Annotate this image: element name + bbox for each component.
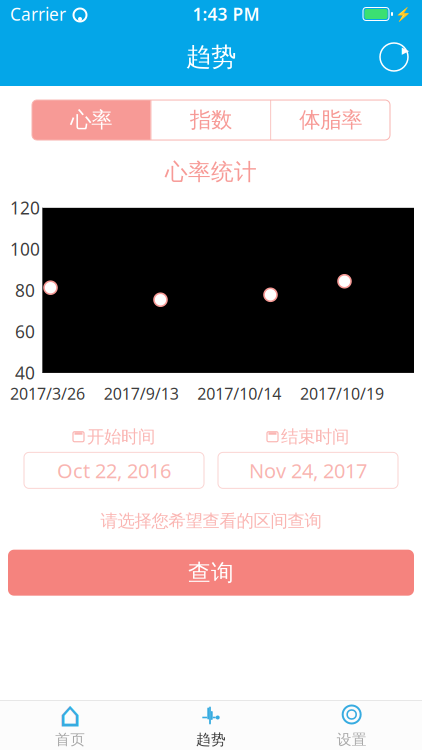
button[interactable]: 查询 <box>8 550 414 596</box>
staticText: ⚡ <box>395 6 412 22</box>
staticText: Nov 24, 2017 <box>249 457 367 484</box>
staticText: 1:43 PM <box>192 2 259 25</box>
button[interactable]: Nov 24, 2017 <box>218 452 398 488</box>
button[interactable]: 体脂率 <box>271 100 390 140</box>
staticText: 查询 <box>188 559 234 586</box>
staticText: 80 <box>15 279 35 302</box>
staticText: 设置 <box>337 730 367 748</box>
staticText: 开始时间 <box>87 426 155 447</box>
staticText: 2017/10/14 <box>197 383 281 404</box>
staticText: 体脂率 <box>299 107 362 133</box>
staticText: 100 <box>10 238 40 261</box>
button[interactable]: 指数 <box>152 100 270 140</box>
staticText: ⌂ <box>59 695 81 734</box>
staticText: 2017/3/26 <box>10 383 85 404</box>
staticText: Oct 22, 2016 <box>57 457 171 484</box>
staticText: 结束时间 <box>281 426 349 447</box>
button[interactable]: 趋势 <box>141 701 281 750</box>
staticText: 指数 <box>190 107 232 133</box>
staticText: Carrier <box>10 2 66 25</box>
button[interactable]: ⌂ <box>0 701 141 750</box>
staticText: 60 <box>15 320 35 343</box>
staticText: 心率 <box>70 107 112 133</box>
staticText: 首页 <box>55 730 85 748</box>
button[interactable]: 心率 <box>32 100 151 140</box>
staticText: 2017/9/13 <box>104 383 179 404</box>
button[interactable]: 设置 <box>281 701 422 750</box>
staticText: ▸ <box>401 42 408 58</box>
staticText: 120 <box>10 196 40 219</box>
button[interactable]: Oct 22, 2016 <box>24 452 204 488</box>
staticText: 请选择您希望查看的区间查询 <box>100 510 321 532</box>
staticText: 心率统计 <box>165 158 257 186</box>
staticText: 趋势 <box>186 41 236 72</box>
button[interactable]: 刷新 <box>372 35 416 79</box>
staticText: 40 <box>15 361 35 384</box>
staticText: 2017/10/19 <box>300 383 384 404</box>
staticText: 趋势 <box>196 730 226 748</box>
